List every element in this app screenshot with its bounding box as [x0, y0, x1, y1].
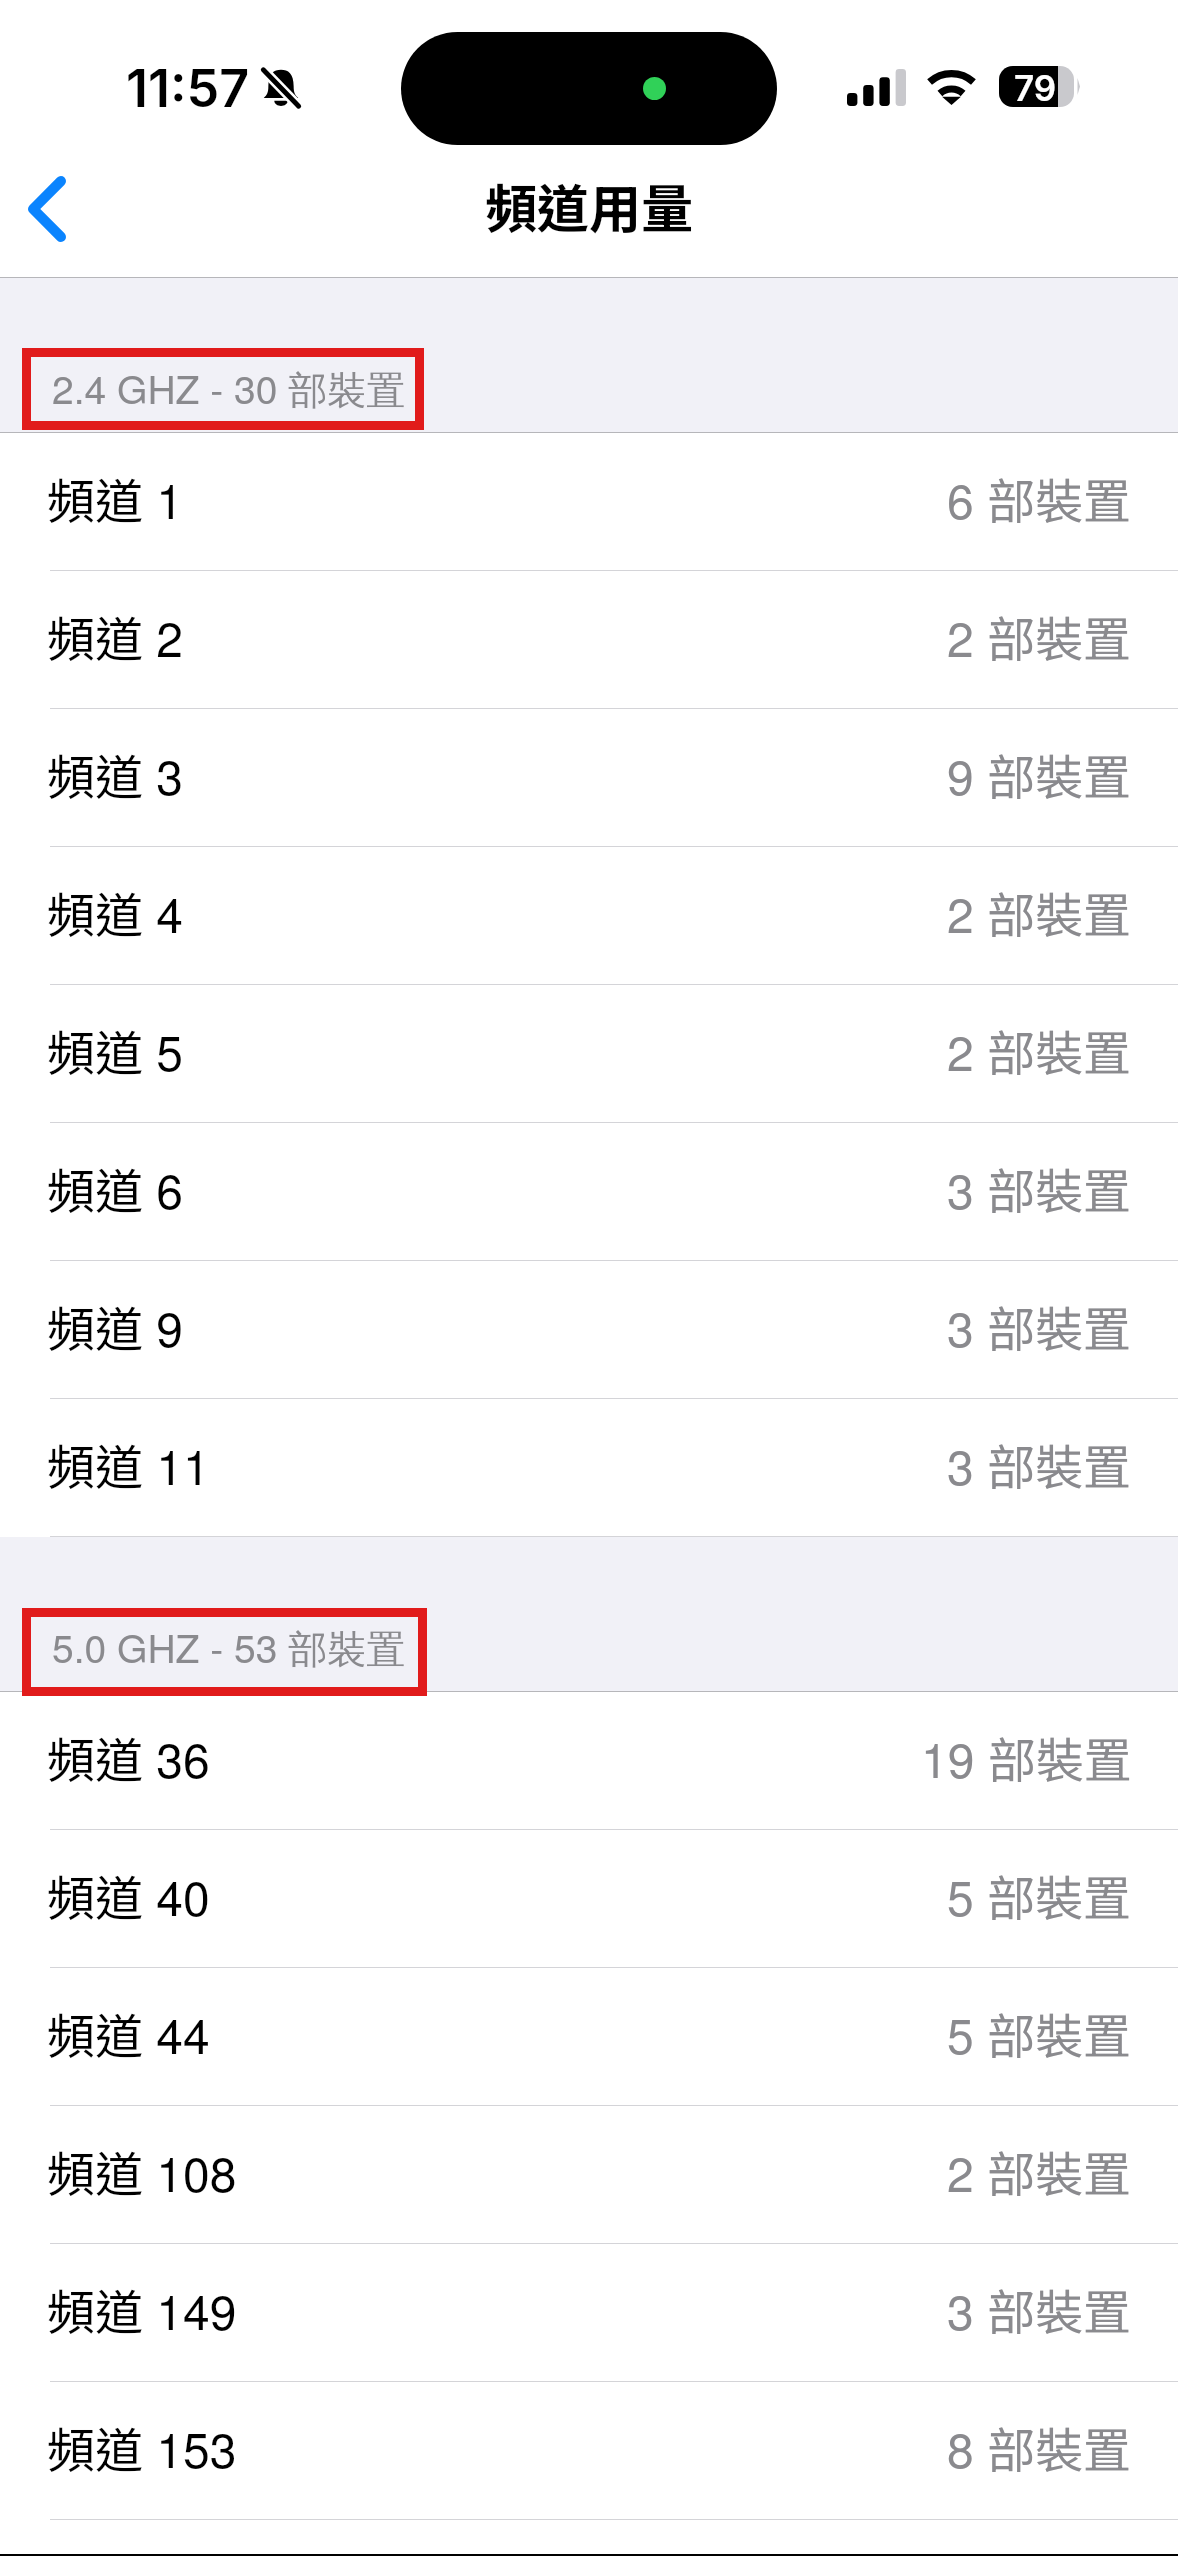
staticText: 2 部裝置 [947, 601, 1132, 671]
staticText: 6 部裝置 [947, 463, 1132, 533]
staticText: 5 部裝置 [947, 1998, 1132, 2068]
staticText: 頻道 11 [47, 1429, 210, 1499]
staticText: 頻道 2 [47, 601, 184, 671]
button[interactable]: 頻道 9 [0, 1261, 1178, 1399]
staticText: 2 部裝置 [947, 2136, 1132, 2206]
staticText: 頻道 36 [47, 1722, 210, 1792]
staticText: 頻道 5 [47, 1015, 184, 1085]
button[interactable]: 頻道 44 [0, 1968, 1178, 2106]
button[interactable]: 頻道 4 [0, 847, 1178, 985]
staticText: 11:57 [126, 57, 250, 120]
button[interactable]: 返回 [7, 159, 87, 259]
staticText: 頻道 3 [47, 739, 184, 809]
button[interactable]: 頻道 6 [0, 1123, 1178, 1261]
staticText: 2 部裝置 [947, 1015, 1132, 1085]
button[interactable]: 頻道 108 [0, 2106, 1178, 2244]
staticText: 3 部裝置 [947, 1291, 1132, 1361]
staticText: 2 部裝置 [947, 877, 1132, 947]
staticText: 頻道 108 [47, 2136, 237, 2206]
staticText: 頻道 40 [47, 1860, 210, 1930]
staticText: 頻道 9 [47, 1291, 184, 1361]
staticText: 9 部裝置 [947, 739, 1132, 809]
button[interactable]: 頻道 1 [0, 433, 1178, 571]
staticText: 5 部裝置 [947, 1860, 1132, 1930]
staticText: 2.4 GHZ - 30 部裝置 [52, 359, 406, 415]
button[interactable]: 頻道 153 [0, 2382, 1178, 2520]
staticText: 3 部裝置 [947, 1429, 1132, 1499]
staticText: 頻道 149 [47, 2274, 237, 2344]
staticText: 3 部裝置 [947, 1153, 1132, 1223]
button[interactable]: 頻道 3 [0, 709, 1178, 847]
staticText: 頻道 1 [47, 463, 184, 533]
button[interactable]: 頻道 2 [0, 571, 1178, 709]
staticText: 79 [1014, 67, 1057, 108]
staticText: 頻道 4 [47, 877, 184, 947]
staticText: 頻道 44 [47, 1998, 210, 2068]
staticText: 3 部裝置 [947, 2274, 1132, 2344]
button[interactable]: 頻道 149 [0, 2244, 1178, 2382]
button[interactable]: 頻道 11 [0, 1399, 1178, 1537]
staticText: 頻道 6 [47, 1153, 184, 1223]
staticText: 8 部裝置 [947, 2412, 1132, 2482]
staticText: 5.0 GHZ - 53 部裝置 [52, 1618, 406, 1674]
button[interactable]: 頻道 5 [0, 985, 1178, 1123]
button[interactable]: 頻道 40 [0, 1830, 1178, 1968]
staticText: 19 部裝置 [921, 1722, 1132, 1792]
staticText: 頻道 153 [47, 2412, 237, 2482]
button[interactable]: 頻道 36 [0, 1692, 1178, 1830]
staticText: 頻道用量 [485, 168, 694, 243]
